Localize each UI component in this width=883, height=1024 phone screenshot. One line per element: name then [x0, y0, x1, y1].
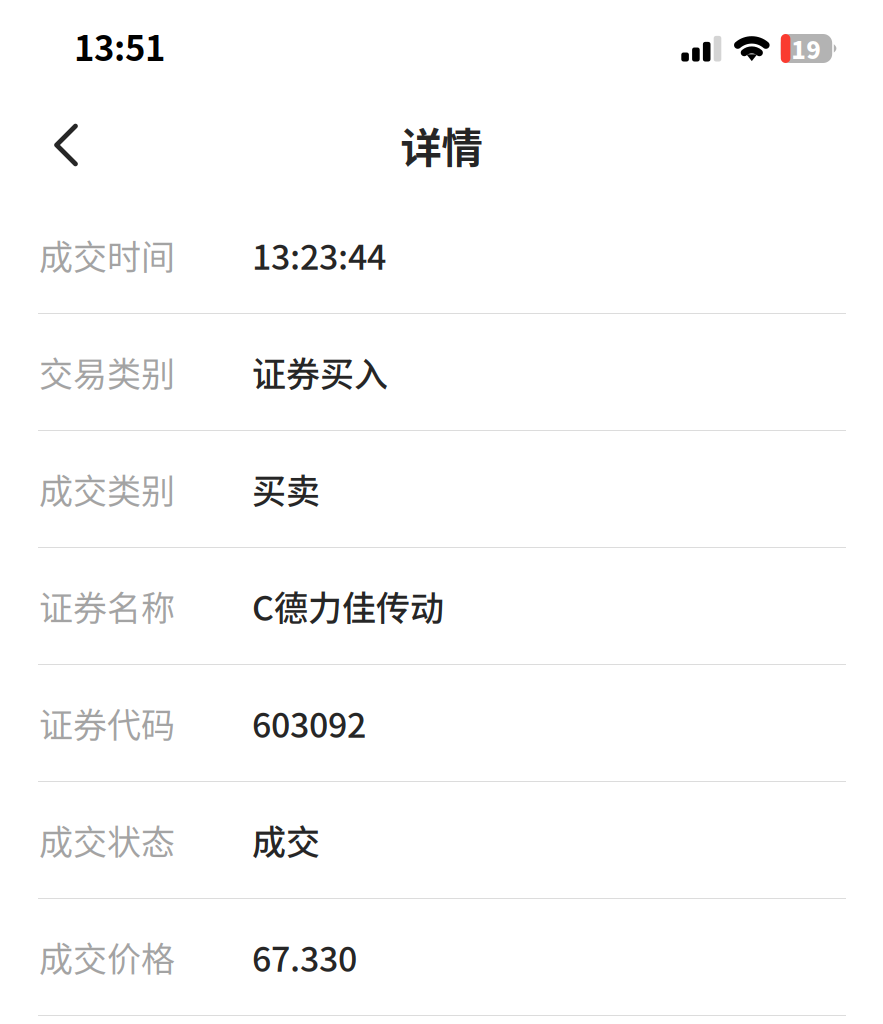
staticText: 19: [791, 31, 821, 66]
staticText: 成交时间: [39, 230, 175, 280]
staticText: 证券买入: [252, 347, 388, 397]
staticText: 交易类别: [39, 347, 175, 397]
staticText: 成交价格: [39, 932, 175, 982]
staticText: 13:51: [74, 21, 165, 71]
staticText: 13:23:44: [252, 230, 386, 280]
staticText: 买卖: [252, 464, 320, 514]
staticText: C德力佳传动: [252, 581, 444, 631]
staticText: 成交类别: [39, 464, 175, 514]
staticText: 67.330: [252, 932, 357, 982]
staticText: 603092: [252, 698, 366, 748]
staticText: 详情: [400, 115, 482, 175]
button[interactable]: Back: [34, 113, 98, 177]
staticText: 证券代码: [39, 698, 175, 748]
staticText: 成交状态: [39, 815, 175, 865]
staticText: 成交: [252, 815, 320, 865]
staticText: 证券名称: [39, 581, 175, 631]
